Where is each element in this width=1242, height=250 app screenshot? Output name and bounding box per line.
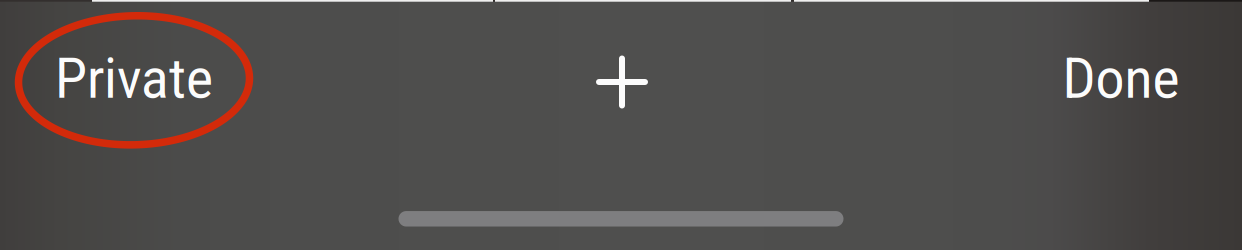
staticText: Private (55, 47, 213, 111)
button[interactable]: Done (1006, 14, 1236, 144)
button[interactable]: New Tab (557, 17, 687, 147)
staticText: Done (1062, 47, 1179, 111)
button[interactable]: Private (9, 14, 259, 144)
